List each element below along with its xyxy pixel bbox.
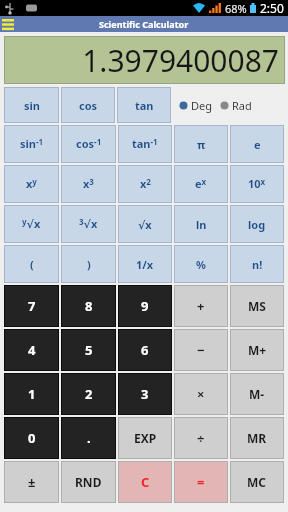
staticText: MC	[247, 474, 267, 490]
staticText: C	[141, 473, 150, 491]
staticText: 10x	[248, 176, 266, 192]
button[interactable]: ex	[174, 165, 228, 203]
button[interactable]: x3	[61, 165, 116, 203]
staticText: EXP	[134, 430, 157, 446]
button[interactable]: 3	[118, 373, 172, 415]
button[interactable]: n!	[230, 245, 284, 283]
button[interactable]: M+	[230, 329, 284, 371]
staticText: 3	[141, 385, 149, 403]
button[interactable]: −	[174, 329, 228, 371]
button[interactable]: ×	[174, 373, 228, 415]
button[interactable]: cos-1	[61, 125, 116, 163]
button[interactable]: e	[230, 125, 284, 163]
staticText: M-	[249, 386, 265, 402]
button[interactable]: x2	[118, 165, 172, 203]
button[interactable]: 5	[61, 329, 116, 371]
staticText: π	[197, 137, 206, 152]
staticText: e	[254, 137, 261, 152]
staticText: 9	[141, 297, 149, 315]
staticText: 1.3979400087	[82, 40, 279, 81]
button[interactable]: ÷	[174, 417, 228, 459]
button[interactable]: Menu	[0, 16, 16, 32]
staticText: 4	[28, 341, 36, 359]
staticText: 2	[85, 385, 93, 403]
button[interactable]: y√x	[4, 205, 59, 243]
button[interactable]: )	[61, 245, 116, 283]
staticText: M+	[248, 342, 267, 358]
button[interactable]: ln	[174, 205, 228, 243]
staticText: =	[197, 473, 205, 491]
staticText: Rad	[232, 98, 252, 113]
button[interactable]: RND	[61, 461, 116, 503]
staticText: 1/x	[136, 257, 154, 272]
button[interactable]: tan-1	[118, 125, 172, 163]
button[interactable]: +	[174, 285, 228, 327]
staticText: −	[197, 341, 205, 359]
button[interactable]: tan	[117, 87, 171, 123]
button[interactable]: (	[4, 245, 59, 283]
button[interactable]: 6	[118, 329, 172, 371]
staticText: cos	[79, 98, 98, 113]
staticText: Scientific Calculator	[99, 18, 189, 30]
staticText: MS	[248, 298, 266, 314]
button[interactable]: 7	[4, 285, 59, 327]
button[interactable]: 1/x	[118, 245, 172, 283]
button[interactable]: 10x	[230, 165, 284, 203]
staticText: 2:50	[260, 0, 284, 16]
staticText: 6	[141, 341, 149, 359]
button[interactable]: 0	[4, 417, 59, 459]
button[interactable]: MC	[230, 461, 284, 503]
staticText: cos-1	[76, 136, 102, 152]
button[interactable]: =	[174, 461, 228, 503]
button[interactable]: log	[230, 205, 284, 243]
staticText: n!	[252, 257, 263, 272]
staticText: tan-1	[132, 136, 158, 152]
button[interactable]: 1	[4, 373, 59, 415]
staticText: Deg	[191, 98, 212, 113]
staticText: )	[87, 257, 91, 272]
staticText: %	[196, 257, 206, 272]
button[interactable]: 2	[61, 373, 116, 415]
button[interactable]: sin	[4, 87, 59, 123]
staticText: 68%	[225, 1, 247, 16]
button[interactable]: MS	[230, 285, 284, 327]
button[interactable]: C	[118, 461, 172, 503]
staticText: x2	[140, 176, 151, 192]
staticText: sin	[24, 98, 40, 113]
button[interactable]: 8	[61, 285, 116, 327]
button[interactable]: M-	[230, 373, 284, 415]
staticText: x3	[83, 176, 94, 192]
staticText: ×	[197, 385, 205, 403]
staticText: 0	[28, 429, 36, 447]
button[interactable]: .	[61, 417, 116, 459]
button[interactable]: ±	[4, 461, 59, 503]
staticText: 3√x	[79, 216, 98, 232]
staticText: ÷	[197, 429, 205, 447]
button[interactable]: 4	[4, 329, 59, 371]
staticText: ex	[195, 176, 207, 192]
staticText: .	[87, 429, 91, 447]
button[interactable]: 9	[118, 285, 172, 327]
staticText: ±	[28, 473, 36, 491]
button[interactable]: Deg	[179, 98, 212, 113]
staticText: +	[197, 297, 205, 315]
button[interactable]: 3√x	[61, 205, 116, 243]
staticText: (	[30, 257, 34, 272]
button[interactable]: %	[174, 245, 228, 283]
staticText: 7	[28, 297, 36, 315]
staticText: log	[248, 217, 266, 232]
button[interactable]: √x	[118, 205, 172, 243]
staticText: tan	[135, 98, 154, 113]
staticText: 5	[85, 341, 93, 359]
staticText: y√x	[22, 216, 41, 232]
staticText: xy	[26, 176, 37, 192]
staticText: sin-1	[20, 136, 44, 152]
staticText: MR	[247, 430, 267, 446]
button[interactable]: EXP	[118, 417, 172, 459]
button[interactable]: xy	[4, 165, 59, 203]
button[interactable]: sin-1	[4, 125, 59, 163]
button[interactable]: π	[174, 125, 228, 163]
button[interactable]: MR	[230, 417, 284, 459]
button[interactable]: cos	[61, 87, 115, 123]
button[interactable]: Rad	[220, 98, 252, 113]
